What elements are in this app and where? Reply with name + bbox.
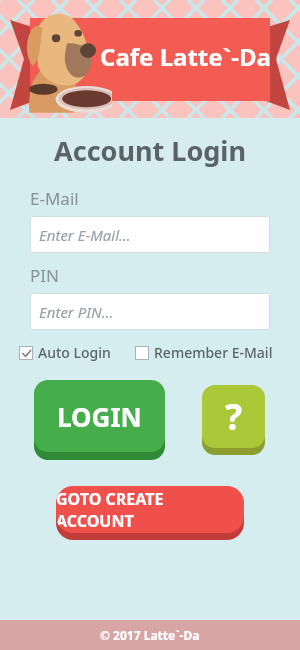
staticText: Cafe Latte`-Da: [100, 40, 271, 73]
button[interactable]: Enter E-Mail...: [30, 216, 270, 253]
button[interactable]: Remember E-Mail: [135, 343, 273, 362]
button[interactable]: LOGIN: [34, 380, 165, 460]
staticText: ?: [225, 392, 243, 441]
staticText: Enter E-Mail...: [39, 225, 131, 245]
staticText: GOTO CREATE ACCOUNT: [56, 488, 244, 532]
staticText: PIN: [30, 264, 59, 287]
staticText: Auto Login: [38, 343, 111, 362]
staticText: Enter PIN...: [39, 302, 114, 322]
button[interactable]: Help: [202, 385, 265, 455]
staticText: E-Mail: [30, 187, 79, 210]
staticText: © 2017 Latte`-Da: [100, 627, 200, 643]
button[interactable]: Auto Login: [19, 343, 111, 362]
staticText: LOGIN: [57, 399, 142, 434]
staticText: Account Login: [0, 132, 300, 169]
button[interactable]: GOTO CREATE ACCOUNT: [56, 486, 244, 540]
staticText: Remember E-Mail: [154, 343, 273, 362]
button[interactable]: Enter PIN...: [30, 293, 270, 330]
